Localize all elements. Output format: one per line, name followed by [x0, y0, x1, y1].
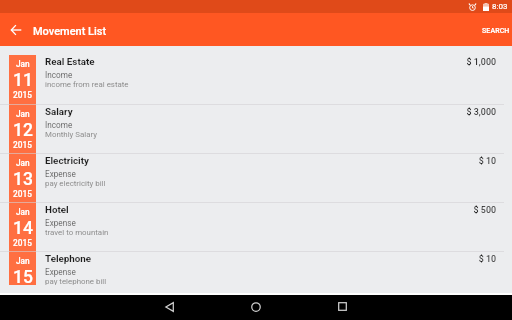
staticText: pay telephone bill: [45, 277, 107, 285]
staticText: Electricity: [45, 155, 89, 166]
button[interactable]: Home: [236, 295, 276, 320]
staticText: $ 3,000: [466, 107, 496, 117]
staticText: Expense: [45, 267, 76, 277]
staticText: 8:03: [492, 2, 508, 11]
staticText: $ 10: [478, 254, 496, 264]
staticText: 15: [13, 267, 33, 285]
staticText: $ 10: [478, 156, 496, 166]
staticText: 14: [13, 218, 33, 239]
staticText: Jan: [16, 158, 30, 168]
staticText: 2015: [13, 189, 32, 199]
staticText: 13: [13, 169, 33, 190]
staticText: Real Estate: [45, 56, 95, 67]
staticText: Jan: [16, 256, 30, 266]
staticText: income from real estate: [45, 80, 129, 89]
staticText: 2015: [13, 238, 32, 248]
button[interactable]: Jan: [0, 154, 512, 203]
button[interactable]: Jan: [0, 105, 512, 154]
staticText: 2015: [13, 140, 32, 150]
button[interactable]: Jan: [0, 203, 512, 252]
button[interactable]: Recent apps: [322, 295, 362, 320]
button[interactable]: Back: [149, 295, 189, 320]
staticText: Jan: [16, 207, 30, 217]
button[interactable]: Back: [0, 13, 33, 46]
staticText: Movement List: [33, 25, 107, 38]
button[interactable]: Jan: [0, 252, 512, 285]
staticText: $ 1,000: [466, 57, 496, 67]
button[interactable]: Jan: [0, 55, 512, 104]
staticText: pay electricity bill: [45, 179, 106, 188]
staticText: $ 500: [473, 205, 496, 215]
staticText: Expense: [45, 169, 76, 179]
staticText: 2015: [13, 90, 32, 100]
staticText: Income: [45, 70, 73, 80]
staticText: Jan: [16, 59, 30, 69]
staticText: Hotel: [45, 204, 69, 215]
button[interactable]: SEARCH: [472, 13, 512, 46]
staticText: 12: [13, 120, 33, 141]
staticText: SEARCH: [482, 27, 510, 35]
staticText: Salary: [45, 106, 73, 117]
staticText: Jan: [16, 109, 30, 119]
staticText: 11: [13, 70, 33, 91]
staticText: Monthly Salary: [45, 130, 97, 139]
staticText: Telephone: [45, 253, 92, 264]
staticText: Expense: [45, 218, 76, 228]
staticText: travel to mountain: [45, 228, 109, 237]
staticText: Income: [45, 120, 73, 130]
